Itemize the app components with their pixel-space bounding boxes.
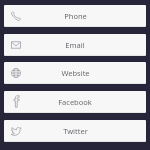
button[interactable]: Email	[4, 34, 146, 56]
staticText: Facebook	[58, 97, 92, 107]
button[interactable]: Phone	[4, 5, 146, 27]
staticText: Twitter	[63, 126, 88, 136]
staticText: Website	[61, 68, 90, 78]
button[interactable]: Twitter	[4, 120, 146, 142]
button[interactable]: Facebook	[4, 91, 146, 113]
staticText: Phone	[64, 11, 87, 21]
button[interactable]: Website	[4, 62, 146, 84]
staticText: Email	[65, 40, 85, 50]
